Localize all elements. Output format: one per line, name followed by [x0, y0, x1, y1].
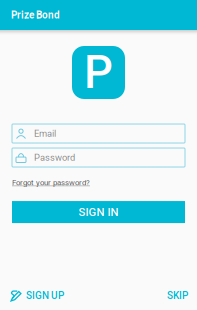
- staticText: P: [84, 46, 113, 99]
- staticText: Prize Bond: [11, 9, 60, 21]
- staticText: Forgot your password?: [12, 178, 90, 187]
- button[interactable]: Password: [12, 148, 185, 167]
- button[interactable]: Forgot your password?: [12, 178, 185, 187]
- staticText: SIGN IN: [78, 205, 118, 219]
- button[interactable]: SKIP: [167, 290, 188, 301]
- button[interactable]: SIGN IN: [12, 201, 185, 223]
- staticText: Email: [34, 128, 56, 139]
- staticText: SKIP: [167, 290, 188, 301]
- button[interactable]: Email: [12, 124, 185, 143]
- staticText: Password: [34, 152, 75, 163]
- staticText: SIGN UP: [26, 290, 64, 301]
- button[interactable]: SIGN UP: [10, 290, 64, 301]
